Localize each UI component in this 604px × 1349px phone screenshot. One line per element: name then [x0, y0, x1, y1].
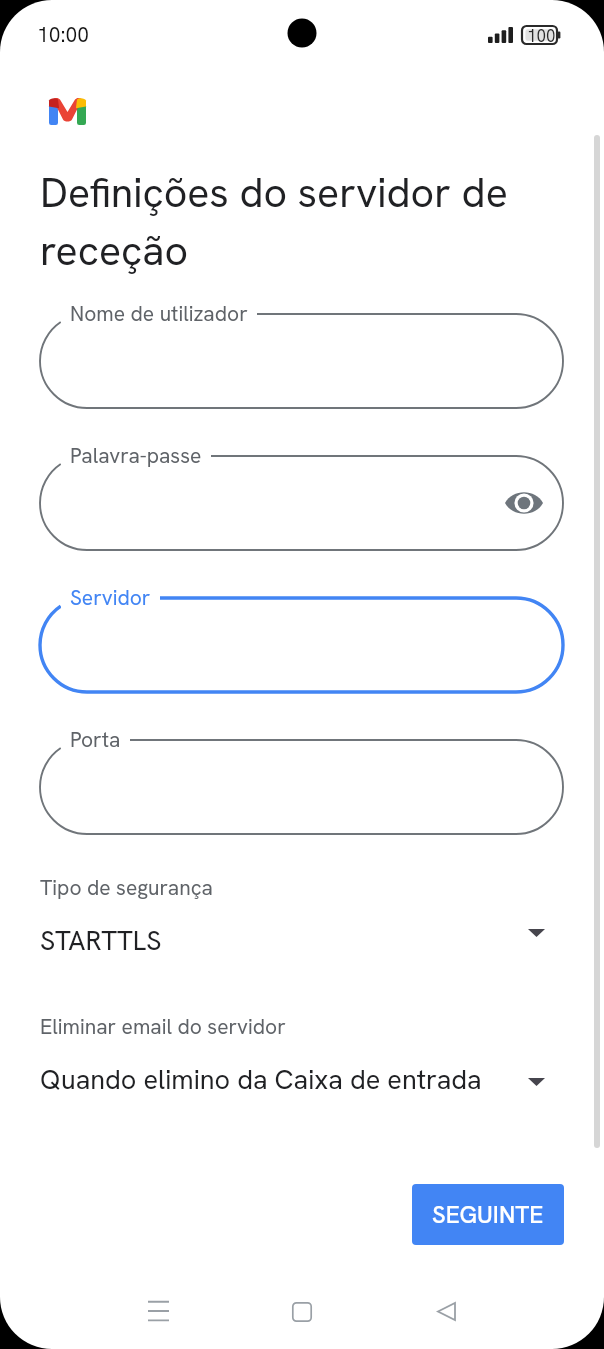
button[interactable]: Nome de utilizador [40, 314, 563, 408]
staticText: Eliminar email do servidor [40, 1013, 286, 1040]
button[interactable]: Servidor [40, 598, 563, 692]
button[interactable]: SEGUINTE [412, 1184, 564, 1245]
staticText: Nome de utilizador [70, 300, 248, 327]
staticText: 10:00 [37, 21, 90, 48]
staticText: SEGUINTE [432, 1199, 544, 1230]
staticText: 100 [527, 25, 556, 47]
button[interactable]: Recentes [114, 1267, 202, 1349]
button[interactable]: Porta [40, 740, 563, 834]
staticText: Tipo de segurança [40, 874, 213, 901]
button[interactable]: Início [258, 1268, 346, 1349]
staticText: Palavra-passe [70, 442, 202, 469]
button[interactable]: Palavra-passe [40, 456, 563, 550]
button[interactable]: Voltar [402, 1267, 490, 1349]
staticText: Porta [70, 726, 121, 753]
staticText: Quando elimino da Caixa de entrada [40, 1062, 482, 1097]
staticText: STARTTLS [40, 923, 162, 958]
button[interactable]: Eliminar email do servidor [40, 1013, 564, 1095]
staticText: Definições do servidor de receção [40, 166, 520, 277]
button[interactable]: Tipo de segurança [40, 874, 564, 956]
button[interactable]: Mostrar palavra-passe [500, 479, 548, 527]
staticText: Servidor [70, 584, 151, 611]
